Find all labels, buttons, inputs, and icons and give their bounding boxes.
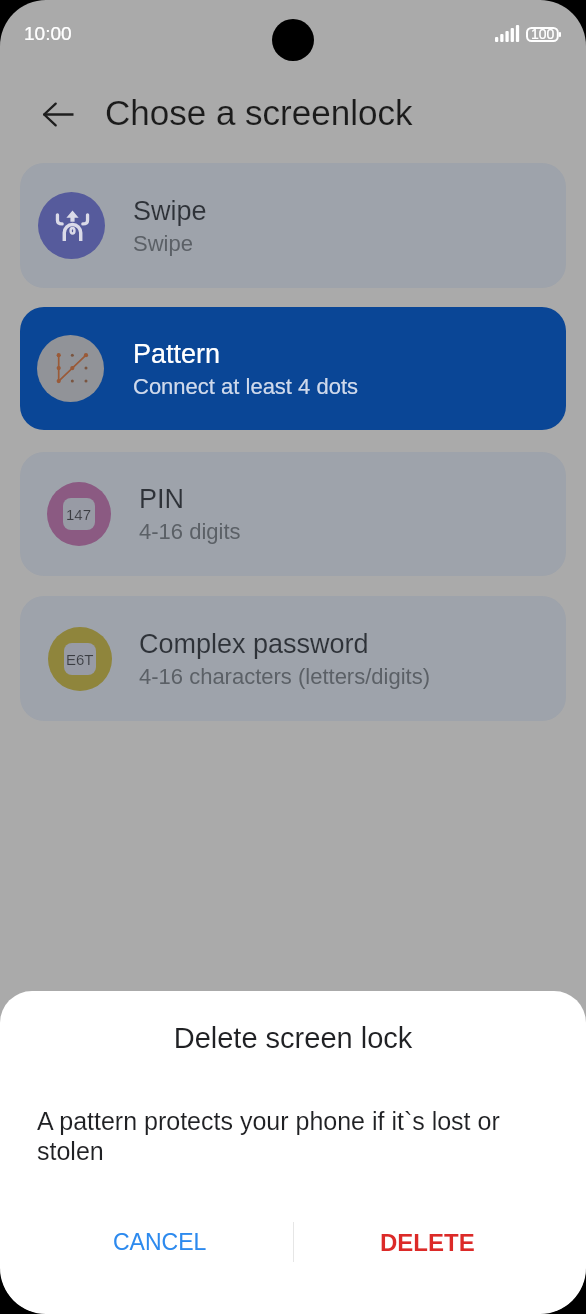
button[interactable]: 147 — [20, 452, 566, 576]
staticText: DELETE — [380, 1229, 475, 1256]
staticText: 10:00 — [24, 23, 72, 44]
button[interactable]: Back — [32, 86, 84, 138]
staticText: Delete screen lock — [0, 1022, 586, 1054]
staticText: 4-16 characters (letters/digits) — [139, 664, 430, 689]
staticText: Chose a screenlock — [105, 93, 413, 132]
button[interactable]: Pattern — [20, 307, 566, 430]
button[interactable]: E6T — [20, 596, 566, 721]
staticText: 100 — [531, 26, 555, 42]
staticText: A pattern protects your phone if it`s lo… — [37, 1107, 530, 1165]
button[interactable]: CANCEL — [80, 1205, 240, 1279]
staticText: Pattern — [133, 339, 221, 369]
staticText: Complex password — [139, 629, 369, 659]
staticText: 4-16 digits — [139, 519, 241, 544]
button[interactable]: Swipe — [20, 163, 566, 288]
staticText: Connect at least 4 dots — [133, 374, 359, 399]
staticText: CANCEL — [113, 1229, 207, 1255]
staticText: Swipe — [133, 231, 193, 256]
staticText: PIN — [139, 484, 185, 514]
staticText: Swipe — [133, 196, 207, 226]
staticText: 147 — [66, 506, 92, 523]
button[interactable]: DELETE — [347, 1205, 507, 1279]
staticText: E6T — [66, 651, 94, 668]
